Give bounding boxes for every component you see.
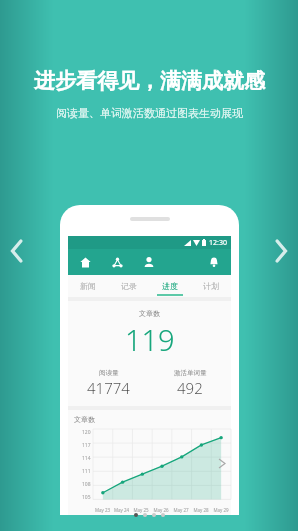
staticText: 119 [125,320,175,359]
staticText: 文章数 [74,415,95,424]
staticText: 文章数 [139,309,160,318]
button[interactable]: Previous [0,234,34,268]
staticText: May 24 [112,507,131,513]
button[interactable]: 阅读量 [68,369,149,398]
button[interactable]: 记录 [108,275,149,297]
button[interactable]: Next [264,234,298,268]
staticText: May 28 [191,507,211,513]
staticText: 进步看得见，满满成就感 [34,68,265,94]
staticText: 12:30 [209,238,227,248]
button[interactable]: 激活单词量 [149,369,231,398]
staticText: 117 [82,442,91,449]
button[interactable]: Notifications [205,253,223,271]
staticText: May 25 [131,507,151,513]
staticText: May 29 [211,507,231,513]
staticText: 105 [82,494,91,501]
staticText: 阅读量、单词激活数通过图表生动展现 [56,106,243,120]
staticText: May 27 [171,507,191,513]
staticText: 新闻 [80,281,96,291]
button[interactable]: Home [76,253,94,271]
button[interactable]: 计划 [190,275,231,297]
staticText: 计划 [203,281,219,291]
button[interactable] [152,513,156,517]
staticText: May 26 [151,507,171,513]
button[interactable]: 进度 [149,275,190,297]
button[interactable]: 新闻 [68,275,108,297]
button[interactable]: Next chart [216,457,228,469]
staticText: 111 [82,468,91,475]
button[interactable]: 文章数 [68,309,231,398]
staticText: 120 [82,429,91,436]
staticText: May 23 [93,507,112,513]
staticText: 108 [82,481,91,488]
button[interactable] [161,513,165,517]
button[interactable] [134,513,138,517]
button[interactable] [143,513,147,517]
staticText: 41774 [87,378,130,398]
button[interactable]: Profile [140,253,158,271]
staticText: 进度 [162,281,178,291]
staticText: 激活单词量 [174,369,207,377]
staticText: 492 [177,378,203,398]
staticText: 记录 [121,281,137,291]
staticText: 114 [82,455,91,462]
staticText: 阅读量 [99,369,119,377]
button[interactable]: Network [108,253,126,271]
